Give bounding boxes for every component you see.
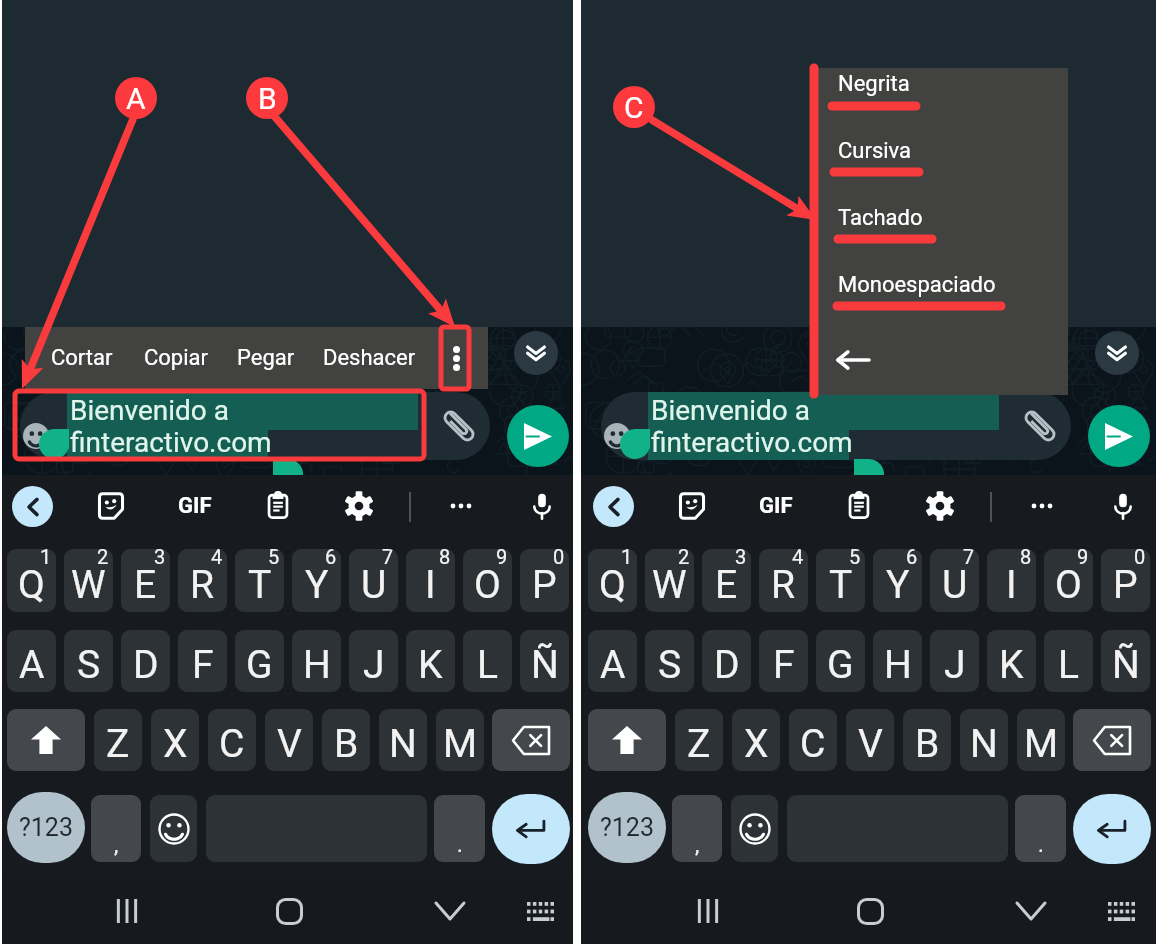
button[interactable]: Attach (440, 407, 478, 445)
button[interactable]: Back (821, 336, 1065, 384)
button[interactable]: Hide keyboard (428, 889, 472, 933)
button[interactable]: L (463, 630, 512, 692)
button[interactable]: Scroll to bottom (1095, 331, 1139, 375)
button[interactable]: N (379, 709, 427, 771)
button[interactable]: X (732, 709, 780, 771)
button[interactable]: Negrita (821, 58, 1065, 110)
button[interactable]: W (64, 549, 113, 612)
button[interactable]: F (178, 630, 227, 692)
button[interactable]: J (349, 630, 398, 692)
button[interactable]: Emoji (604, 423, 630, 449)
button[interactable]: Home (848, 889, 892, 933)
button[interactable]: U (930, 549, 979, 612)
button[interactable]: Back (593, 486, 634, 527)
button[interactable]: ?123 (588, 792, 666, 863)
button[interactable]: Settings (338, 485, 380, 527)
button[interactable]: Clipboard (257, 485, 299, 527)
button[interactable]: Hide keyboard (1009, 889, 1053, 933)
button[interactable]: More (1021, 485, 1063, 527)
button[interactable]: Shift (588, 709, 666, 771)
button[interactable]: Recents (686, 889, 730, 933)
button[interactable]: B (903, 709, 951, 771)
button[interactable]: Emoji keyboard (731, 795, 778, 862)
button[interactable]: Emoji keyboard (150, 795, 197, 862)
button[interactable]: Switch keyboard (518, 889, 562, 933)
button[interactable]: Cursiva (821, 125, 1065, 177)
button[interactable]: E (121, 549, 170, 612)
button[interactable]: S (64, 630, 113, 692)
button[interactable]: O (1044, 549, 1093, 612)
button[interactable]: Settings (919, 485, 961, 527)
button[interactable]: Pegar (223, 327, 309, 389)
button[interactable]: R (759, 549, 808, 612)
button[interactable]: A (588, 630, 637, 692)
button[interactable]: C (789, 709, 837, 771)
button[interactable]: Z (94, 709, 142, 771)
button[interactable]: M (1017, 709, 1065, 771)
button[interactable]: Enter (1073, 794, 1151, 864)
button[interactable]: A (7, 630, 56, 692)
button[interactable]: Attach (1021, 407, 1059, 445)
button[interactable]: D (702, 630, 751, 692)
button[interactable]: V (265, 709, 313, 771)
button[interactable]: R (178, 549, 227, 612)
button[interactable]: Copiar (130, 327, 222, 389)
button[interactable]: T (816, 549, 865, 612)
button[interactable]: C (208, 709, 256, 771)
button[interactable]: Tachado (821, 192, 1065, 244)
button[interactable]: O (463, 549, 512, 612)
button[interactable]: Emoji (23, 423, 49, 449)
button[interactable]: Switch keyboard (1099, 889, 1143, 933)
button[interactable]: I (987, 549, 1036, 612)
button[interactable]: Voice input (521, 485, 563, 527)
button[interactable]: D (121, 630, 170, 692)
button[interactable]: S (645, 630, 694, 692)
button[interactable]: Deshacer (309, 327, 430, 389)
button[interactable]: G (816, 630, 865, 692)
button[interactable]: Shift (7, 709, 85, 771)
button[interactable]: Voice input (1102, 485, 1144, 527)
button[interactable]: Backspace (492, 709, 570, 771)
button[interactable]: . (434, 795, 485, 862)
button[interactable]: . (1015, 795, 1066, 862)
button[interactable]: M (436, 709, 484, 771)
button[interactable]: B (322, 709, 370, 771)
button[interactable]: J (930, 630, 979, 692)
button[interactable]: Backspace (1073, 709, 1151, 771)
button[interactable]: Ñ (520, 630, 569, 692)
button[interactable]: Enter (492, 794, 570, 864)
button[interactable]: T (235, 549, 284, 612)
button[interactable]: H (292, 630, 341, 692)
button[interactable]: Recents (105, 889, 149, 933)
button[interactable]: Monoespaciado (821, 259, 1065, 311)
button[interactable]: N (960, 709, 1008, 771)
button[interactable]: P (1101, 549, 1150, 612)
button[interactable]: , (91, 795, 141, 862)
button[interactable]: Home (267, 889, 311, 933)
button[interactable]: , (672, 795, 722, 862)
button[interactable]: Scroll to bottom (514, 331, 558, 375)
button[interactable]: L (1044, 630, 1093, 692)
button[interactable]: K (987, 630, 1036, 692)
button[interactable]: Z (675, 709, 723, 771)
button[interactable]: U (349, 549, 398, 612)
button[interactable]: Send (507, 405, 569, 467)
button[interactable]: Sticker (671, 485, 713, 527)
button[interactable]: Y (873, 549, 922, 612)
button[interactable]: Clipboard (838, 485, 880, 527)
button[interactable]: Ñ (1101, 630, 1150, 692)
button[interactable]: GIF (752, 486, 800, 526)
button[interactable]: E (702, 549, 751, 612)
button[interactable]: GIF (171, 486, 219, 526)
button[interactable]: Q (7, 549, 56, 612)
button[interactable]: P (520, 549, 569, 612)
button[interactable]: Send (1088, 405, 1150, 467)
button[interactable]: Sticker (90, 485, 132, 527)
button[interactable]: V (846, 709, 894, 771)
button[interactable]: I (406, 549, 455, 612)
button[interactable]: Y (292, 549, 341, 612)
button[interactable]: Q (588, 549, 637, 612)
button[interactable]: Back (12, 486, 53, 527)
